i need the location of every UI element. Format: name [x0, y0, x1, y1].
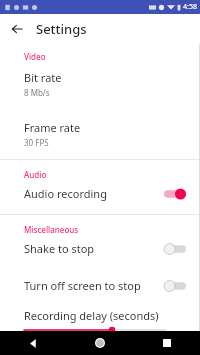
staticText: 4:58 — [183, 2, 197, 12]
staticText: Recording delay (seconds) — [24, 308, 159, 323]
staticText: Audio — [24, 169, 47, 180]
staticText: 8 Mb/s — [24, 87, 50, 98]
staticText: Bit rate — [24, 70, 62, 85]
button[interactable]: Home — [90, 333, 110, 353]
button[interactable]: Back — [6, 18, 28, 40]
staticText: Audio recording — [24, 186, 164, 201]
staticText: Turn off screen to stop — [24, 278, 164, 293]
staticText: Miscellaneous — [24, 224, 79, 235]
button[interactable]: Turn off screen to stop — [0, 272, 200, 299]
button[interactable]: Recent apps — [157, 333, 177, 353]
staticText: Settings — [36, 20, 87, 38]
staticText: Video — [24, 51, 46, 62]
button[interactable]: Bit rate — [0, 62, 200, 100]
staticText: Shake to stop — [24, 241, 164, 256]
staticText: Frame rate — [24, 120, 81, 135]
staticText: 30 FPS — [24, 137, 49, 148]
button[interactable]: Back — [23, 333, 43, 353]
button[interactable]: Shake to stop — [0, 235, 200, 262]
button[interactable]: Recording delay (seconds) — [0, 308, 200, 331]
button[interactable]: Frame rate — [0, 112, 200, 150]
button[interactable]: Audio recording — [0, 180, 200, 207]
